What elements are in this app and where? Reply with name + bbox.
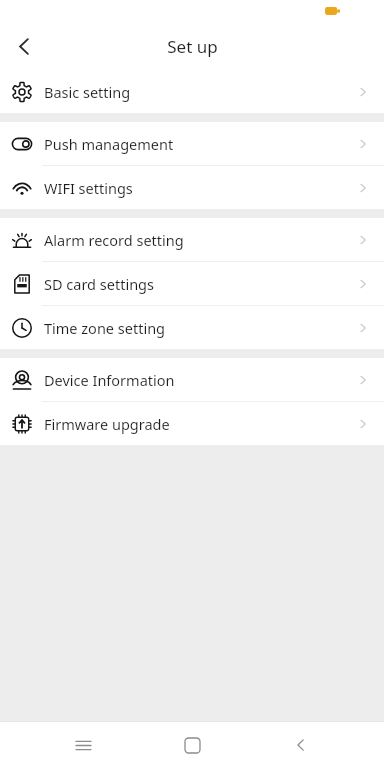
button[interactable]: Home [166, 722, 218, 768]
button[interactable]: Back [275, 722, 327, 768]
button[interactable]: Back [0, 22, 48, 70]
button[interactable]: Time zone setting [0, 306, 384, 349]
staticText: SD card settings [44, 274, 356, 294]
staticText: Set up [167, 35, 218, 58]
staticText: Push management [44, 134, 356, 154]
button[interactable]: Firmware upgrade [0, 402, 384, 445]
button[interactable]: Device Information [0, 358, 384, 401]
staticText: WIFI settings [44, 178, 356, 198]
button[interactable]: WIFI settings [0, 166, 384, 209]
staticText: Device Information [44, 370, 356, 390]
button[interactable]: Recents [57, 722, 109, 768]
staticText: Firmware upgrade [44, 414, 356, 434]
staticText: Basic setting [44, 82, 356, 102]
button[interactable]: Push management [0, 122, 384, 165]
staticText: Time zone setting [44, 318, 356, 338]
staticText: Alarm record setting [44, 230, 356, 250]
button[interactable]: Basic setting [0, 70, 384, 113]
button[interactable]: SD card settings [0, 262, 384, 305]
button[interactable]: Alarm record setting [0, 218, 384, 261]
